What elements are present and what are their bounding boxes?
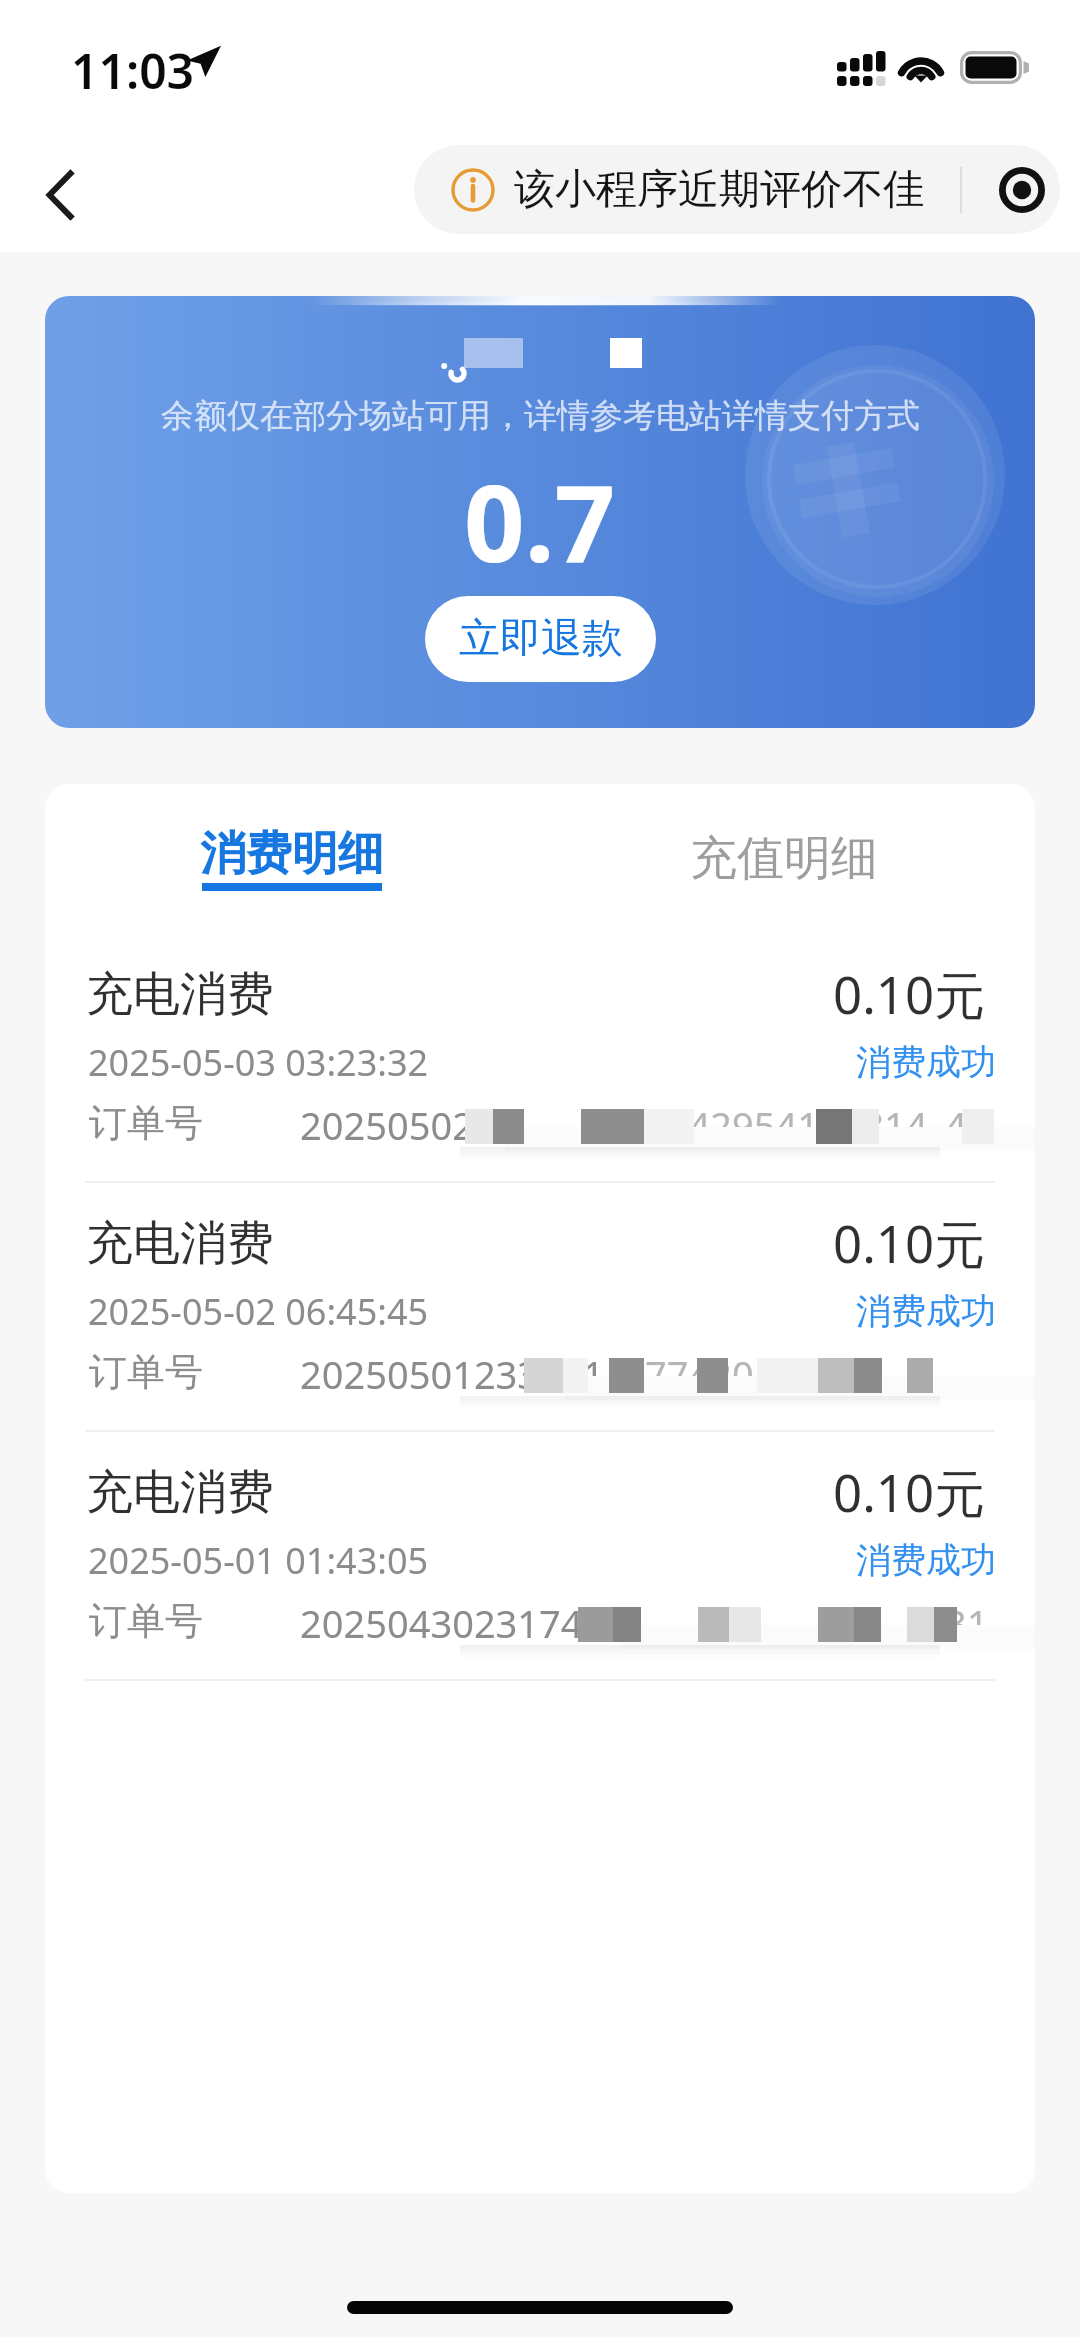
- button[interactable]: 立即退款: [425, 596, 656, 682]
- staticText: 2025-05-02 06:45:45: [88, 1287, 429, 1336]
- staticText: 消费明细: [200, 825, 384, 883]
- staticText: 余额仅在部分场站可用，详情参考电站详情支付方式: [161, 395, 920, 437]
- button[interactable]: Back: [5, 140, 115, 250]
- staticText: 46: [945, 1099, 989, 1151]
- staticText: 消费成功: [856, 1040, 996, 1084]
- staticText: 0.7: [464, 449, 616, 593]
- staticText: 充值明细: [690, 829, 878, 888]
- staticText: 充电消费: [86, 1214, 274, 1273]
- staticText: 20250430231744: [300, 1597, 605, 1649]
- staticText: 0.10元: [833, 959, 986, 1029]
- staticText: 2025050211: [300, 1099, 518, 1151]
- button[interactable]: 充电消费: [45, 949, 1035, 1198]
- button[interactable]: 消费明细: [114, 800, 470, 916]
- staticText: 该小程序近期评价不佳: [514, 164, 924, 216]
- staticText: 消费成功: [856, 1289, 996, 1333]
- staticText: 订单号: [89, 1597, 203, 1645]
- staticText: 0.10元: [833, 1457, 986, 1527]
- staticText: 消费成功: [856, 1538, 996, 1582]
- staticText: 31: [945, 1597, 989, 1649]
- staticText: 充电消费: [86, 1463, 274, 1522]
- staticText: 57: [790, 1348, 834, 1400]
- staticText: 0.10元: [833, 1208, 986, 1278]
- staticText: 订单号: [89, 1348, 203, 1396]
- staticText: 2025-05-03 03:23:32: [88, 1038, 429, 1087]
- staticText: 立即退款: [459, 613, 623, 665]
- button[interactable]: 充电消费: [45, 1447, 1035, 1696]
- button[interactable]: 充电消费: [45, 1198, 1035, 1447]
- staticText: 7142954114814: [645, 1099, 928, 1151]
- staticText: 订单号: [89, 1099, 203, 1147]
- button[interactable]: 充值明细: [606, 802, 962, 914]
- staticText: 11:03: [71, 38, 195, 103]
- button[interactable]: 该小程序近期评价不佳: [414, 145, 1060, 234]
- staticText: 20250501233901: [300, 1348, 605, 1400]
- staticText: 2025-05-01 01:43:05: [88, 1536, 429, 1585]
- staticText: 77420: [645, 1348, 754, 1400]
- staticText: 充电消费: [86, 965, 274, 1024]
